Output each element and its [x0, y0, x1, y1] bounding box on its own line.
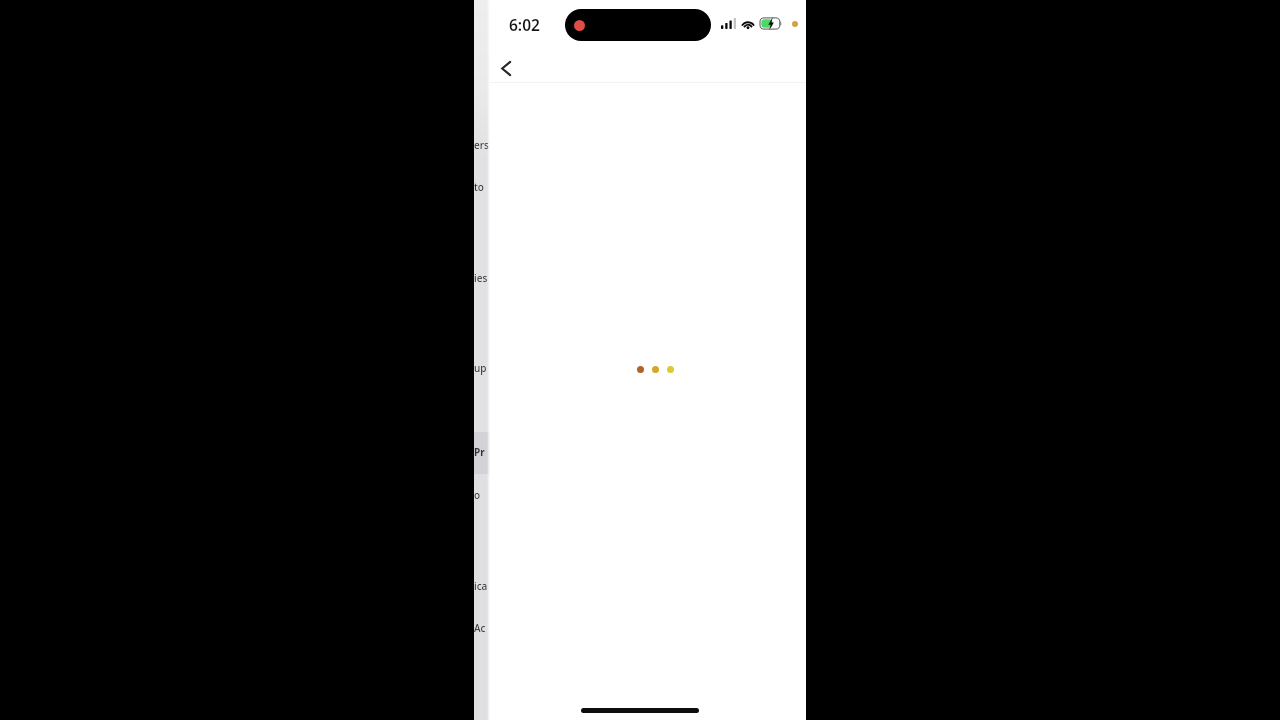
button[interactable]: Selected drawer item: [474, 432, 490, 474]
button[interactable]: ups: [474, 361, 490, 375]
button[interactable]: ica: [474, 579, 488, 593]
button[interactable]: ies: [474, 271, 488, 285]
button[interactable]: Home: [581, 708, 699, 713]
button[interactable]: Ac: [474, 621, 486, 635]
button[interactable]: o: [474, 488, 481, 502]
button[interactable]: Screen recording in progress: [565, 9, 711, 41]
button[interactable]: Pr: [474, 445, 485, 459]
other: Battery charging: [760, 17, 782, 30]
other: Wi-Fi: [741, 18, 755, 29]
other: Loading: [637, 366, 674, 373]
staticText: 6:02: [509, 14, 540, 35]
button[interactable]: ers: [474, 138, 489, 152]
other: Cellular signal: [721, 18, 736, 29]
button[interactable]: Back: [489, 51, 523, 85]
button[interactable]: to: [474, 180, 484, 194]
